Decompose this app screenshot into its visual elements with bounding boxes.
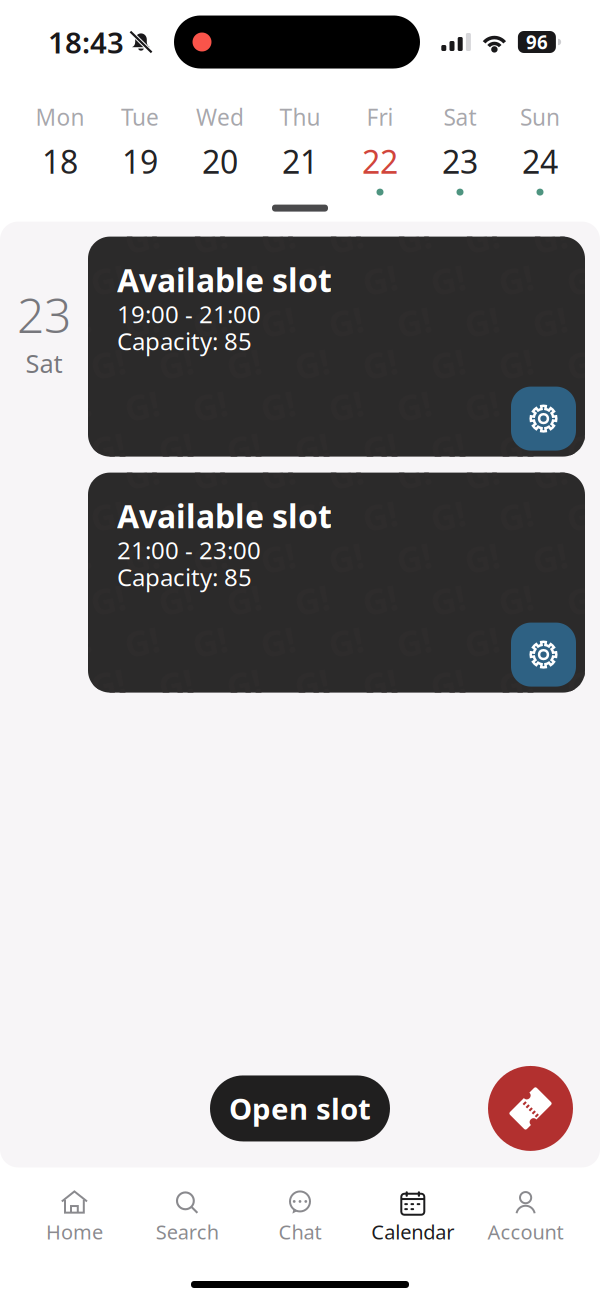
staticText: G! bbox=[124, 215, 159, 261]
staticText: G! bbox=[362, 425, 397, 471]
staticText: G! bbox=[158, 661, 193, 707]
staticText: G! bbox=[226, 341, 261, 387]
staticText: G! bbox=[56, 299, 91, 345]
button[interactable]: Sun bbox=[500, 102, 580, 196]
button[interactable]: Slot settings bbox=[511, 387, 576, 451]
button[interactable]: Calendar bbox=[356, 1185, 469, 1249]
staticText: G! bbox=[260, 215, 295, 261]
staticText: G! bbox=[328, 467, 363, 513]
staticText: G! bbox=[566, 425, 600, 471]
staticText: G! bbox=[532, 467, 567, 513]
staticText: 21 bbox=[282, 140, 318, 183]
staticText: G! bbox=[396, 215, 431, 261]
button[interactable]: Wed bbox=[180, 102, 260, 196]
button[interactable]: Slot settings bbox=[511, 623, 576, 687]
staticText: G! bbox=[90, 425, 125, 471]
staticText: G! bbox=[260, 451, 295, 497]
staticText: G! bbox=[124, 299, 159, 345]
button[interactable]: Tue bbox=[100, 102, 180, 196]
staticText: G! bbox=[294, 661, 329, 707]
button[interactable]: Fri bbox=[340, 102, 420, 196]
button[interactable]: Thu bbox=[260, 102, 340, 196]
staticText: G! bbox=[430, 661, 465, 707]
staticText: G! bbox=[566, 577, 600, 623]
staticText: G! bbox=[498, 425, 533, 471]
staticText: G! bbox=[260, 467, 295, 513]
staticText: Capacity: 85 bbox=[117, 561, 252, 593]
staticText: G! bbox=[158, 257, 193, 303]
button[interactable]: Home bbox=[18, 1185, 131, 1249]
staticText: G! bbox=[158, 577, 193, 623]
staticText: Account bbox=[488, 1218, 564, 1245]
button[interactable]: Search bbox=[131, 1185, 244, 1249]
staticText: G! bbox=[532, 451, 567, 497]
button[interactable]: Sat bbox=[420, 102, 500, 196]
staticText: G! bbox=[192, 451, 227, 497]
staticText: G! bbox=[192, 535, 227, 581]
button[interactable]: Open slot bbox=[210, 1075, 390, 1141]
staticText: G! bbox=[566, 509, 600, 555]
staticText: G! bbox=[294, 509, 329, 555]
button[interactable]: Chat bbox=[244, 1185, 356, 1249]
staticText: G! bbox=[192, 299, 227, 345]
staticText: Home bbox=[46, 1218, 103, 1245]
staticText: G! bbox=[566, 341, 600, 387]
staticText: G! bbox=[90, 493, 125, 539]
button[interactable]: Mon bbox=[20, 102, 100, 196]
staticText: Fri bbox=[366, 102, 393, 132]
staticText: 23 bbox=[17, 283, 71, 346]
staticText: Wed bbox=[196, 102, 244, 132]
staticText: G! bbox=[192, 467, 227, 513]
staticText: G! bbox=[56, 215, 91, 261]
staticText: G! bbox=[532, 215, 567, 261]
staticText: G! bbox=[226, 577, 261, 623]
staticText: 20 bbox=[202, 140, 238, 183]
staticText: G! bbox=[328, 215, 363, 261]
staticText: 22 bbox=[362, 140, 398, 183]
staticText: G! bbox=[464, 467, 499, 513]
staticText: G! bbox=[226, 257, 261, 303]
staticText: Thu bbox=[279, 102, 320, 132]
staticText: Mon bbox=[35, 102, 84, 132]
staticText: G! bbox=[56, 535, 91, 581]
staticText: G! bbox=[90, 257, 125, 303]
staticText: G! bbox=[158, 493, 193, 539]
staticText: G! bbox=[362, 661, 397, 707]
staticText: G! bbox=[566, 493, 600, 539]
button[interactable]: Account bbox=[469, 1185, 582, 1249]
button[interactable]: Tickets bbox=[488, 1066, 573, 1151]
